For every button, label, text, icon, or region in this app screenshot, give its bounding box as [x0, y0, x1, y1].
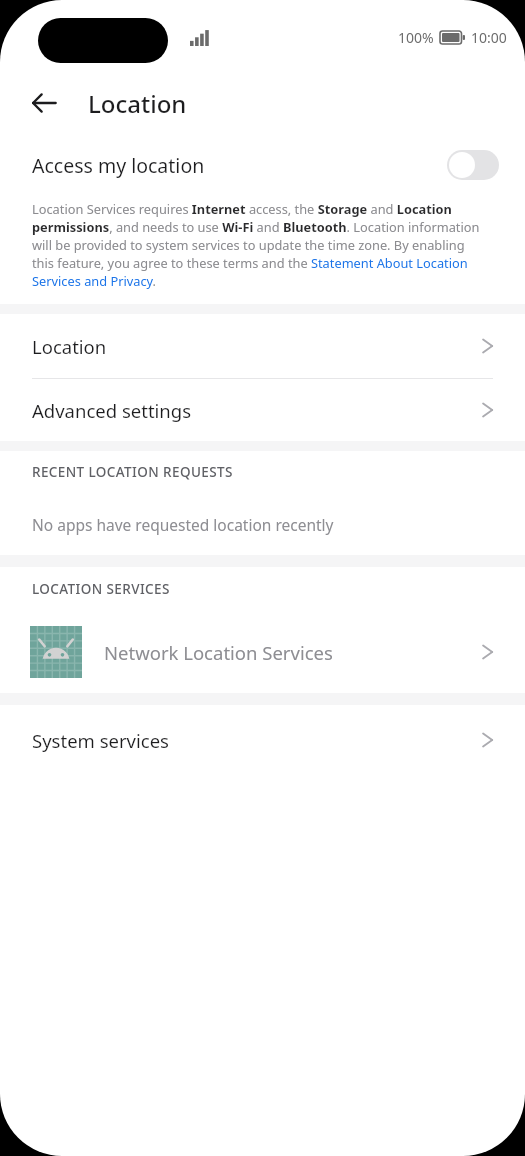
staticText: LOCATION SERVICES	[32, 580, 170, 598]
staticText: No apps have requested location recently	[32, 514, 334, 535]
staticText: Location	[32, 334, 481, 359]
staticText: Network Location Services	[104, 640, 481, 665]
staticText: Location Services requires Internet acce…	[32, 200, 483, 290]
button[interactable]: Advanced settings	[0, 379, 525, 441]
staticText: 10:00	[471, 28, 507, 47]
staticText: Location	[88, 87, 187, 120]
staticText: Access my location	[32, 152, 447, 179]
staticText: 100%	[398, 28, 434, 47]
button[interactable]: Location	[0, 314, 525, 378]
button[interactable]: Access my location	[0, 134, 525, 196]
button[interactable]: Back	[22, 81, 66, 125]
button[interactable]: System services	[0, 705, 525, 775]
staticText: Advanced settings	[32, 398, 481, 423]
button[interactable]: Network Location Services	[0, 611, 525, 693]
staticText: RECENT LOCATION REQUESTS	[32, 463, 233, 481]
staticText: System services	[32, 728, 481, 753]
